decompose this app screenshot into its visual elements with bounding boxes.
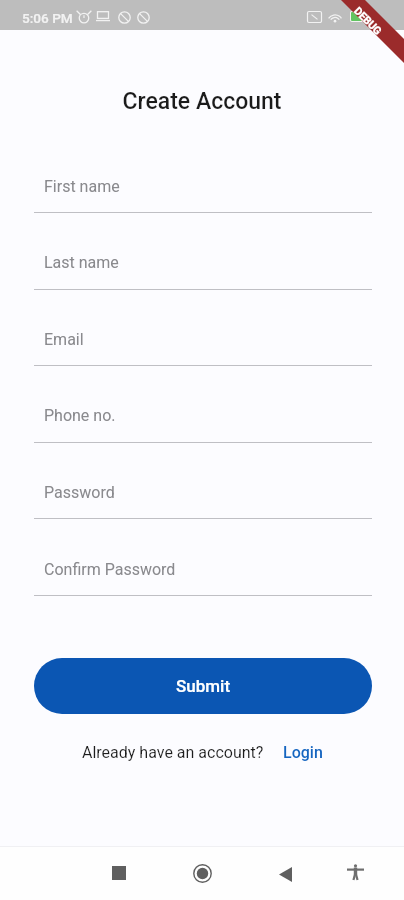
staticText: Phone no. [44, 406, 116, 425]
staticText: Submit [176, 676, 231, 696]
button[interactable]: Submit [34, 658, 372, 714]
staticText: DEBUG [352, 5, 384, 37]
staticText: Password [44, 483, 115, 502]
staticText: First name [44, 177, 120, 196]
button[interactable]: Home [180, 851, 224, 895]
button[interactable]: Recent apps [97, 851, 141, 895]
staticText: Email [44, 330, 84, 349]
staticText: Create Account [0, 88, 404, 115]
staticText: Confirm Password [44, 560, 176, 579]
button[interactable]: Back [263, 852, 307, 896]
staticText: 5:06 PM [22, 10, 73, 26]
button[interactable]: Login [283, 743, 323, 762]
staticText: Already have an account? [82, 743, 264, 762]
staticText: Login [283, 743, 323, 762]
staticText: Last name [44, 253, 119, 272]
button[interactable]: Accessibility [333, 850, 377, 894]
